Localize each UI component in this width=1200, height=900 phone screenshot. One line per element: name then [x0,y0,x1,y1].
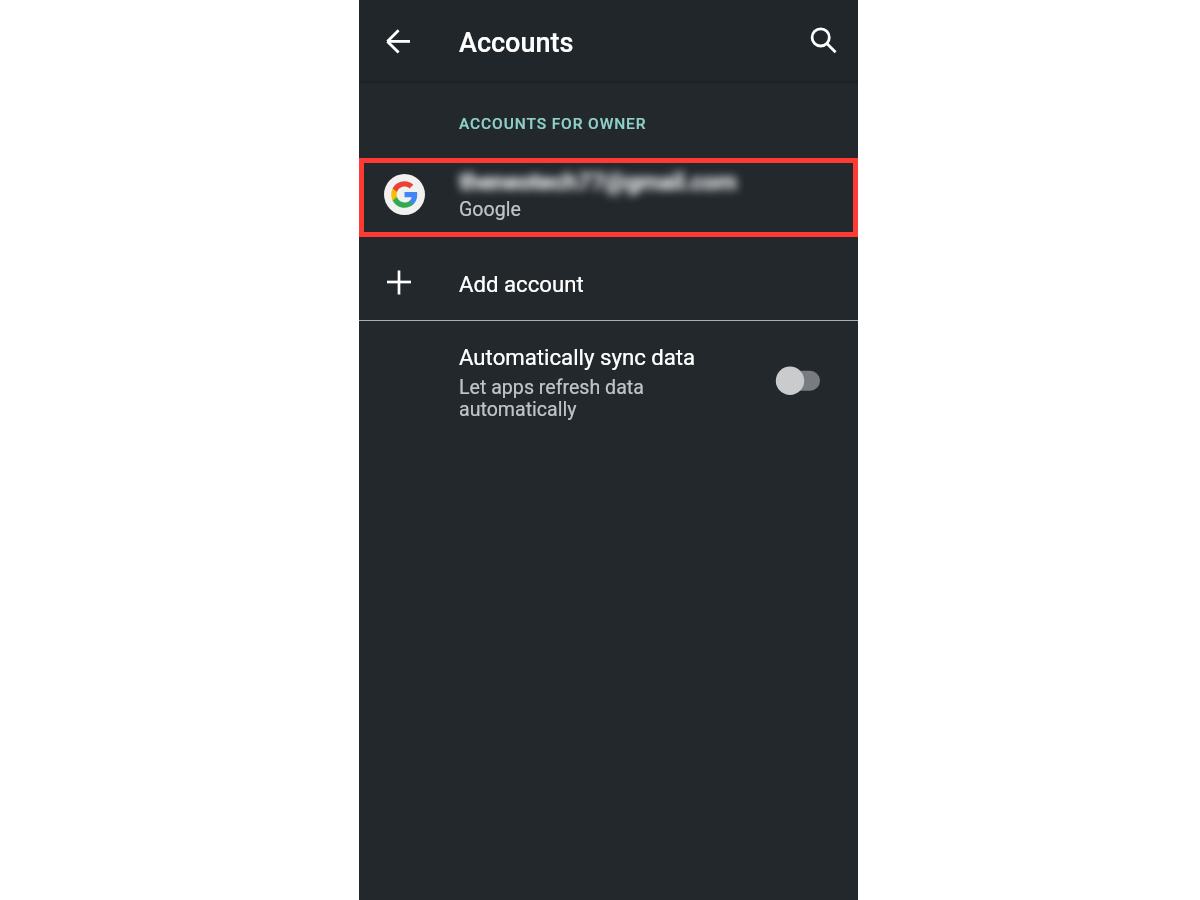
staticText: theneotech77@gmail.com [459,168,737,196]
staticText: Add account [459,271,584,297]
button[interactable]: theneotech77@gmail.com [359,158,858,237]
button[interactable]: Automatically sync data [359,323,858,435]
button[interactable]: Search [800,14,848,62]
button[interactable]: Automatically sync data, off [760,352,832,400]
staticText: Accounts [459,27,574,59]
button[interactable]: Navigate up [375,17,423,65]
staticText: Let apps refresh data automatically [459,376,644,421]
staticText: Google [459,198,521,221]
button[interactable]: Add account [359,237,858,321]
staticText: Automatically sync data [459,344,696,370]
staticText: ACCOUNTS FOR OWNER [459,115,647,133]
